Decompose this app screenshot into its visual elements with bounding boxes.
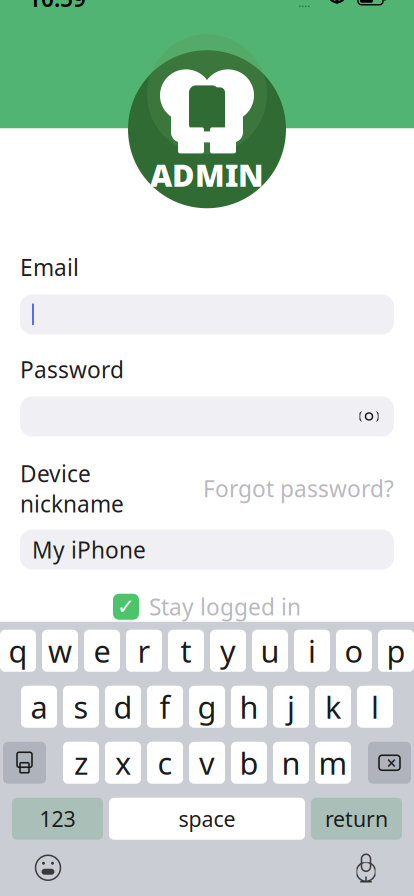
staticText: r [137, 630, 150, 671]
button[interactable]: a [21, 686, 57, 728]
staticText: e [93, 630, 110, 671]
staticText: w [48, 630, 72, 671]
staticText: Stay logged in [149, 592, 301, 622]
button[interactable]: w [42, 630, 78, 672]
staticText: a [30, 686, 47, 727]
button[interactable]: e [84, 630, 120, 672]
button[interactable]: z [63, 742, 99, 784]
staticText: c [157, 742, 172, 783]
staticText: l [371, 686, 379, 727]
staticText: i [308, 630, 316, 671]
staticText: Forgot password? [203, 473, 394, 504]
button[interactable]: space [109, 798, 305, 840]
staticText: ADMIN [150, 154, 264, 195]
button[interactable]: o [336, 630, 372, 672]
staticText: Device nickname [20, 458, 124, 519]
button[interactable]: return [311, 798, 402, 840]
button[interactable]: t [168, 630, 204, 672]
button[interactable]: i [294, 630, 330, 672]
button[interactable]: p [378, 630, 414, 672]
button[interactable]: Dictate [348, 850, 384, 886]
button[interactable]: j [273, 686, 309, 728]
staticText: y [220, 630, 236, 671]
button[interactable]: k [315, 686, 351, 728]
staticText: Password [20, 354, 124, 384]
staticText: s [73, 686, 88, 727]
staticText: h [239, 686, 258, 727]
staticText: space [178, 805, 235, 833]
staticText: return [325, 805, 388, 833]
staticText: d [113, 686, 132, 727]
button[interactable]: Emoji [30, 850, 66, 886]
staticText: x [115, 742, 131, 783]
button[interactable]: d [105, 686, 141, 728]
staticText: •••• [298, 2, 310, 11]
button[interactable]: Delete [368, 742, 411, 784]
staticText: m [318, 742, 347, 783]
button[interactable]: f [147, 686, 183, 728]
staticText: o [344, 630, 363, 671]
staticText: v [199, 742, 215, 783]
staticText: q [8, 630, 27, 671]
staticText: My iPhone [32, 535, 146, 565]
staticText: k [325, 686, 341, 727]
button[interactable]: c [147, 742, 183, 784]
staticText: j [287, 686, 295, 727]
staticText: 10:59 [28, 0, 86, 13]
button[interactable]: 123 [12, 798, 103, 840]
staticText: f [159, 686, 170, 727]
staticText: g [197, 686, 216, 727]
staticText: 123 [39, 805, 75, 833]
staticText: × [386, 751, 396, 774]
button[interactable]: y [210, 630, 246, 672]
button[interactable]: h [231, 686, 267, 728]
button[interactable]: g [189, 686, 225, 728]
button[interactable]: l [357, 686, 393, 728]
button[interactable]: Show password [352, 399, 386, 433]
staticText: b [239, 742, 258, 783]
button[interactable]: Forgot password? [203, 473, 394, 504]
staticText: u [260, 630, 279, 671]
staticText: n [281, 742, 300, 783]
button[interactable]: r [126, 630, 162, 672]
button[interactable]: Shift [3, 742, 46, 784]
staticText: ✓ [117, 595, 135, 619]
button[interactable]: u [252, 630, 288, 672]
staticText: z [74, 742, 88, 783]
button[interactable]: q [0, 630, 36, 672]
staticText: Email [20, 252, 79, 282]
button[interactable]: s [63, 686, 99, 728]
staticText: t [180, 630, 191, 671]
button[interactable]: v [189, 742, 225, 784]
button[interactable]: m [315, 742, 351, 784]
button[interactable]: x [105, 742, 141, 784]
staticText: p [386, 630, 405, 671]
button[interactable]: ✓ [113, 592, 301, 622]
button[interactable]: n [273, 742, 309, 784]
button[interactable]: b [231, 742, 267, 784]
